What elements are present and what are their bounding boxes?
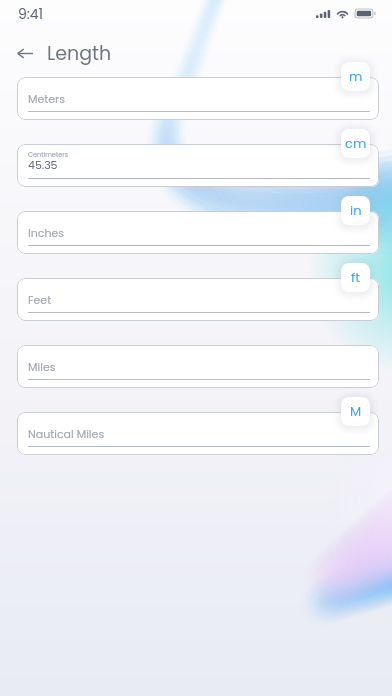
button[interactable]: Inches (17, 211, 379, 254)
staticText: Centimeters (28, 150, 69, 159)
staticText: Feet (28, 292, 52, 307)
button[interactable]: Miles (17, 345, 379, 388)
staticText: Length (47, 40, 112, 67)
staticText: 45.35 (28, 157, 58, 172)
button[interactable]: M (341, 397, 370, 426)
staticText: 9:41 (18, 4, 44, 24)
staticText: Nautical Miles (28, 426, 105, 441)
staticText: M (350, 402, 362, 420)
button[interactable]: Centimeters (17, 144, 379, 187)
button[interactable]: Meters (17, 77, 379, 120)
button[interactable]: cm (341, 129, 370, 158)
button[interactable]: in (341, 196, 370, 225)
staticText: Miles (28, 359, 56, 374)
staticText: m (349, 67, 363, 85)
staticText: cm (345, 134, 367, 152)
button[interactable]: m (341, 62, 370, 91)
staticText: in (350, 201, 362, 219)
button[interactable]: ft (341, 263, 370, 292)
button[interactable]: Back (9, 37, 41, 69)
staticText: Inches (28, 225, 65, 240)
staticText: Meters (28, 91, 65, 106)
button[interactable]: Feet (17, 278, 379, 321)
staticText: ft (351, 268, 361, 286)
button[interactable]: Nautical Miles (17, 412, 379, 455)
